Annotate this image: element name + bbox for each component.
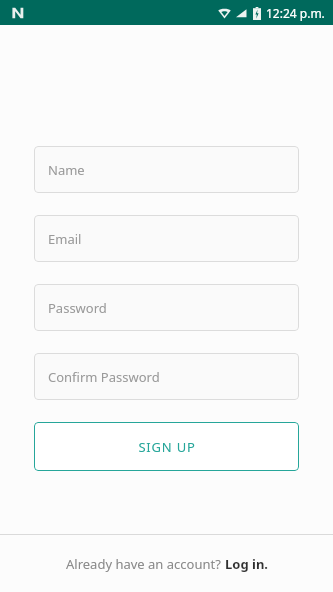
staticText: SIGN UP xyxy=(138,438,196,456)
staticText: Email xyxy=(48,230,82,248)
button[interactable]: Name xyxy=(34,146,299,193)
button[interactable]: Password xyxy=(34,284,299,331)
button[interactable]: Already have an account? xyxy=(54,547,280,581)
button[interactable]: SIGN UP xyxy=(34,422,299,471)
staticText: Already have an account? xyxy=(66,555,225,573)
button[interactable]: Email xyxy=(34,215,299,262)
staticText: Name xyxy=(48,161,85,179)
staticText: 12:24 p.m. xyxy=(266,5,325,21)
other: Android N xyxy=(11,6,25,20)
staticText: Confirm Password xyxy=(48,368,160,386)
button[interactable]: Confirm Password xyxy=(34,353,299,400)
staticText: Password xyxy=(48,299,107,317)
staticText: Log in. xyxy=(225,555,268,573)
